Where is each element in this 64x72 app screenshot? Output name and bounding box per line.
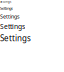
staticText: Settings	[0, 33, 31, 43]
staticText: Settings	[0, 5, 13, 11]
staticText: Settings	[0, 22, 25, 31]
staticText: Settings	[0, 0, 11, 3]
staticText: Settings	[0, 13, 20, 20]
